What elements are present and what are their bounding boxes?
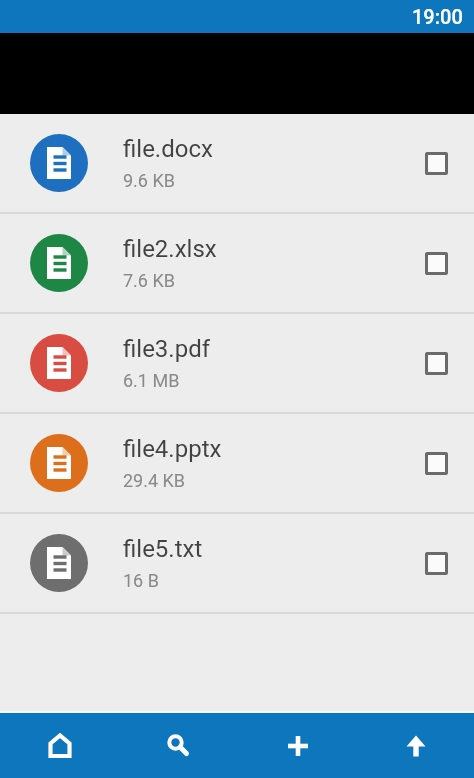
button[interactable]: file.docx [0,114,474,214]
button[interactable] [0,713,119,778]
staticText: 6.1 MB [123,370,180,391]
staticText: 29.4 KB [123,470,186,491]
staticText: 9.6 KB [123,170,175,191]
button[interactable] [357,713,474,778]
button[interactable] [238,713,357,778]
staticText: 19:00 [412,5,463,28]
staticText: 7.6 KB [123,270,175,291]
staticText: file.docx [123,135,213,163]
button[interactable]: file2.xlsx [0,214,474,314]
staticText: file5.txt [123,535,203,563]
staticText: file3.pdf [123,335,211,363]
button[interactable] [119,713,238,778]
staticText: file2.xlsx [123,235,217,263]
button[interactable]: file5.txt [0,514,474,614]
staticText: file4.pptx [123,435,222,463]
staticText: 16 B [123,570,159,591]
button[interactable]: file4.pptx [0,414,474,514]
button[interactable]: file3.pdf [0,314,474,414]
